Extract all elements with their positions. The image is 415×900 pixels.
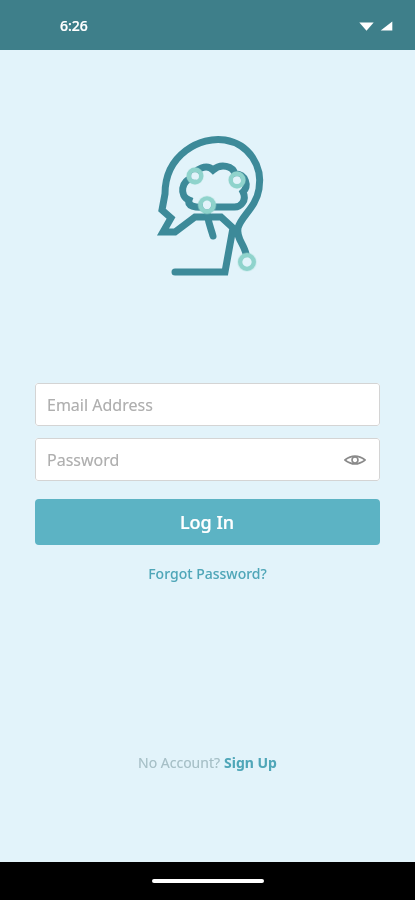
staticText: Forgot Password? [148, 564, 267, 583]
staticText: Sign Up [224, 753, 277, 772]
button[interactable]: Show password [340, 445, 370, 475]
button[interactable]: Forgot Password? [136, 560, 279, 587]
button[interactable]: Email Address [35, 383, 380, 426]
staticText: Password [47, 449, 120, 471]
button[interactable]: Log In [35, 499, 380, 545]
button[interactable]: Sign Up [224, 753, 277, 772]
staticText: Log In [180, 510, 235, 535]
staticText: 6:26 [60, 16, 88, 35]
staticText: Email Address [47, 394, 153, 416]
staticText: No Account? [138, 753, 224, 772]
